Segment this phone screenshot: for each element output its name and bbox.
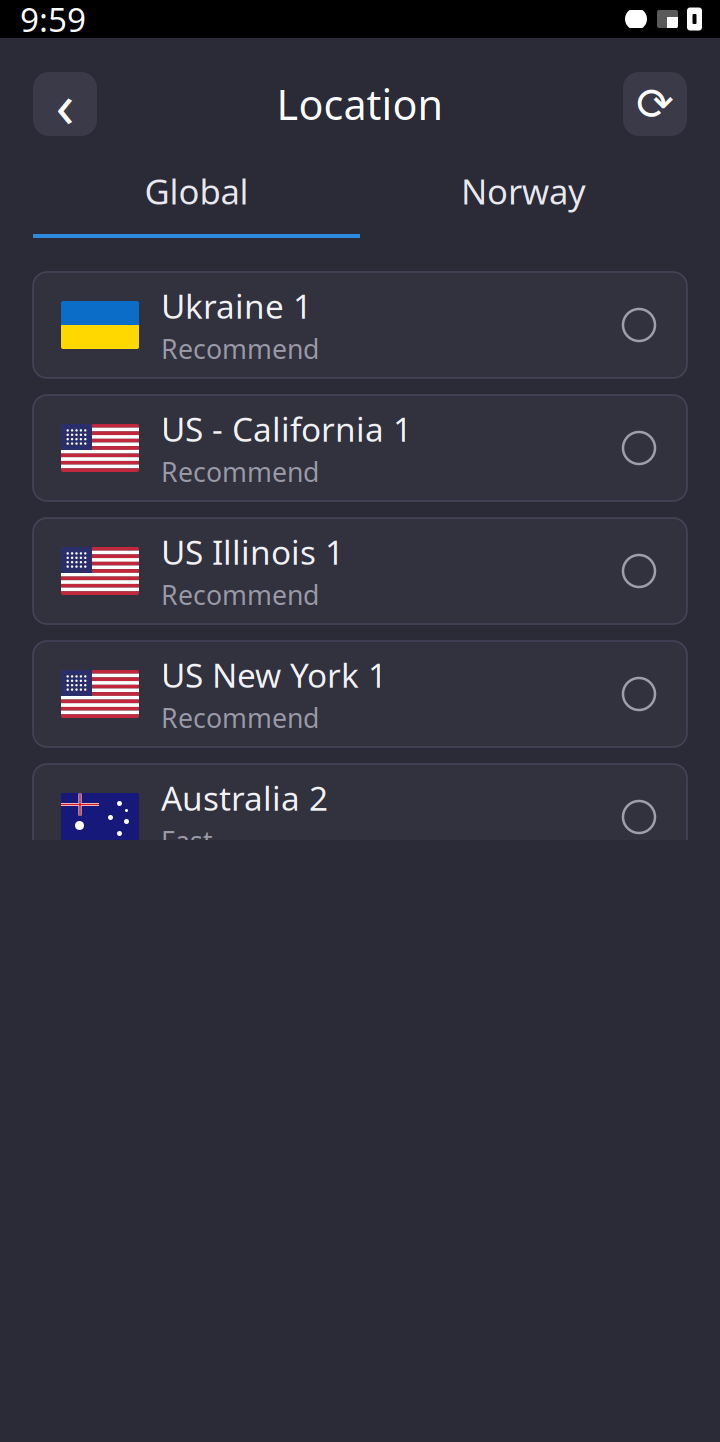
staticText: Norway	[461, 168, 586, 214]
staticText: 9:59	[20, 0, 86, 41]
button[interactable]: US - California 1	[33, 395, 687, 501]
button[interactable]: US Illinois 1	[33, 518, 687, 624]
staticText: Recommend	[161, 331, 319, 366]
staticText: Fast	[161, 823, 213, 858]
button[interactable]: Back	[33, 72, 97, 136]
staticText: Location	[276, 77, 443, 131]
staticText: Recommend	[161, 577, 319, 612]
staticText: ‹	[55, 63, 74, 145]
staticText: US New York 1	[161, 653, 387, 697]
staticText: US Illinois 1	[161, 530, 344, 574]
staticText: Global	[144, 168, 248, 214]
staticText: Recommend	[161, 454, 319, 489]
staticText: Recommend	[161, 700, 319, 735]
staticText: Australia 2	[161, 776, 328, 820]
button[interactable]: Ukraine 1	[33, 272, 687, 378]
staticText: US - California 1	[161, 407, 412, 451]
staticText: ⟳	[636, 78, 674, 130]
button[interactable]: US New York 1	[33, 641, 687, 747]
staticText: Ukraine 1	[161, 284, 312, 328]
button[interactable]: Australia 2	[33, 764, 687, 870]
button[interactable]: Global	[33, 160, 360, 222]
button[interactable]: Refresh	[623, 72, 687, 136]
button[interactable]: Norway	[360, 160, 687, 222]
